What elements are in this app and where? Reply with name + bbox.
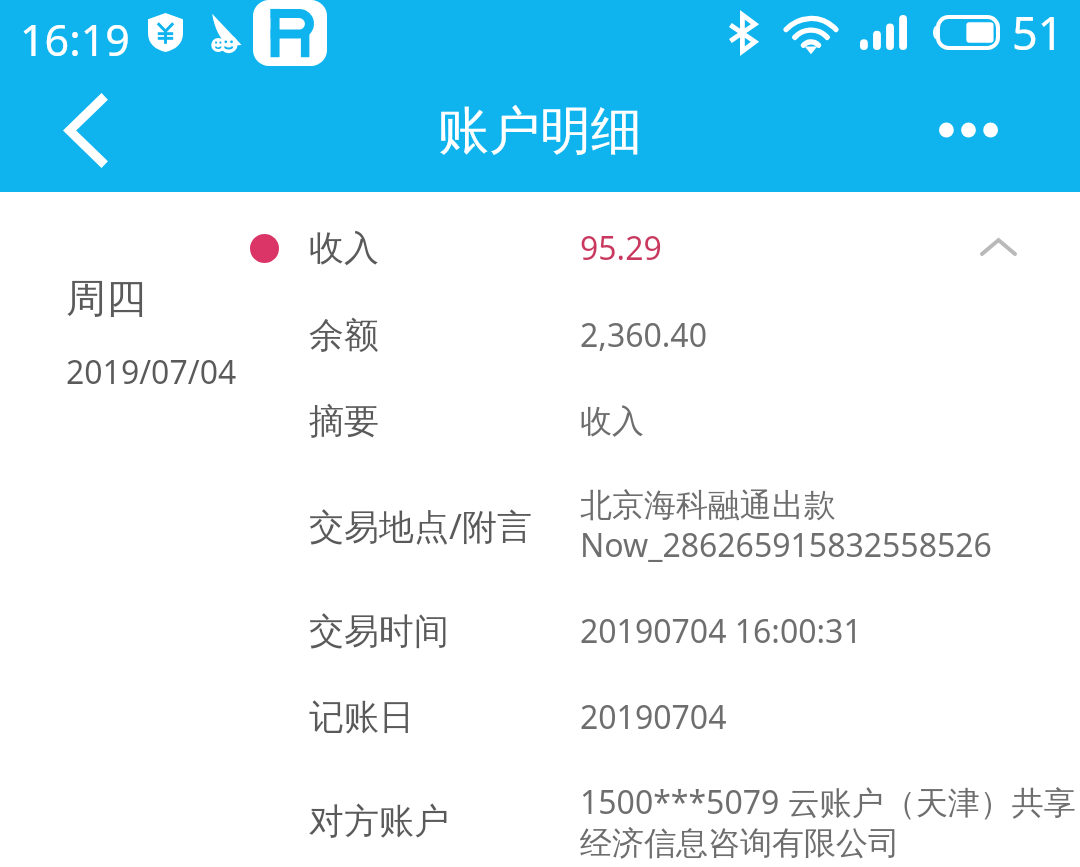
button[interactable]: More options xyxy=(921,86,1015,174)
staticText: 16:19 xyxy=(20,10,130,69)
button[interactable]: 收入 xyxy=(0,205,1080,291)
staticText: 账户明细 xyxy=(438,99,642,163)
staticText: 交易地点/附言 xyxy=(309,502,533,550)
button[interactable]: 对方账户 xyxy=(0,761,1080,867)
staticText: 收入 xyxy=(309,226,379,270)
staticText: 对方账户 xyxy=(309,799,449,843)
staticText: 51 xyxy=(1012,2,1064,63)
staticText: 收入 xyxy=(580,401,1080,441)
staticText: 95.29 xyxy=(580,226,1080,270)
staticText: 摘要 xyxy=(309,399,379,443)
staticText: 20190704 xyxy=(580,695,1080,739)
button[interactable]: Back xyxy=(20,68,150,192)
staticText: 余额 xyxy=(309,313,379,357)
staticText: 1500***5079 云账户（天津）共享经济信息咨询有限公司 xyxy=(580,780,1080,863)
button[interactable]: 记账日 xyxy=(0,673,1080,761)
staticText: 记账日 xyxy=(309,695,414,739)
staticText: 2019/07/04 xyxy=(66,350,237,394)
staticText: 周四 xyxy=(66,273,146,323)
button[interactable]: 摘要 xyxy=(0,378,1080,464)
button[interactable]: 余额 xyxy=(0,291,1080,378)
button[interactable]: 交易地点/附言 xyxy=(0,464,1080,588)
button[interactable]: 交易时间 xyxy=(0,588,1080,673)
staticText: 20190704 16:00:31 xyxy=(580,609,1080,653)
staticText: 2,360.40 xyxy=(580,313,1080,357)
staticText: 交易时间 xyxy=(309,609,449,653)
staticText: 北京海科融通出款 Now_286265915832558526 xyxy=(580,485,1080,567)
